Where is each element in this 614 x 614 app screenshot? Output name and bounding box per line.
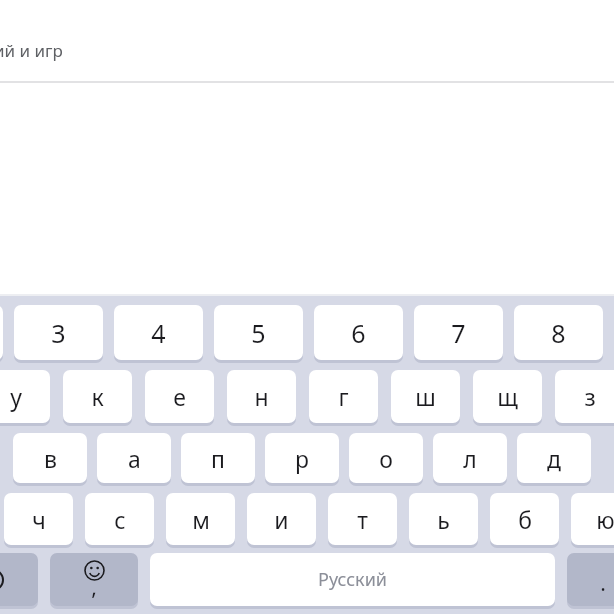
staticText: ю xyxy=(596,504,614,535)
button[interactable]: 3 xyxy=(14,305,103,360)
button[interactable]: г xyxy=(309,370,378,423)
staticText: к xyxy=(91,381,104,412)
staticText: г xyxy=(338,381,349,412)
button[interactable]: у xyxy=(0,370,50,423)
button[interactable]: е xyxy=(145,370,214,423)
staticText: л xyxy=(463,443,477,474)
button[interactable]: п xyxy=(181,433,255,483)
button[interactable]: 8 xyxy=(514,305,603,360)
button[interactable]: о xyxy=(349,433,423,483)
staticText: е xyxy=(173,381,186,412)
staticText: р xyxy=(295,443,309,474)
button[interactable]: щ xyxy=(473,370,542,423)
staticText: ч xyxy=(32,504,46,535)
button[interactable]: з xyxy=(555,370,614,423)
staticText: с xyxy=(114,504,126,535)
staticText: ий и игр xyxy=(0,39,63,62)
staticText: ш xyxy=(415,381,436,412)
button[interactable]: с xyxy=(85,493,154,545)
button[interactable]: Period xyxy=(567,553,614,606)
staticText: 8 xyxy=(551,316,566,350)
staticText: щ xyxy=(497,381,518,412)
staticText: ь xyxy=(437,504,450,535)
staticText: д xyxy=(547,443,561,474)
staticText: 3 xyxy=(51,316,66,350)
button[interactable]: д xyxy=(517,433,591,483)
staticText: а xyxy=(128,443,141,474)
button[interactable]: 2 xyxy=(0,305,3,360)
button[interactable]: ч xyxy=(4,493,73,545)
staticText: у xyxy=(10,381,22,412)
button[interactable]: ь xyxy=(409,493,478,545)
button[interactable]: а xyxy=(97,433,171,483)
staticText: б xyxy=(518,504,532,535)
button[interactable]: р xyxy=(265,433,339,483)
button[interactable]: 5 xyxy=(214,305,303,360)
button[interactable]: б xyxy=(490,493,559,545)
button[interactable]: к xyxy=(63,370,132,423)
staticText: 6 xyxy=(351,316,366,350)
button[interactable]: Switch keyboard xyxy=(0,553,38,606)
button[interactable]: т xyxy=(328,493,397,545)
staticText: в xyxy=(44,443,57,474)
staticText: 5 xyxy=(251,316,266,350)
button[interactable]: 6 xyxy=(314,305,403,360)
button[interactable]: л xyxy=(433,433,507,483)
button[interactable]: 7 xyxy=(414,305,503,360)
button[interactable]: н xyxy=(227,370,296,423)
button[interactable]: Русский xyxy=(150,553,555,606)
staticText: , xyxy=(91,573,97,602)
staticText: Русский xyxy=(318,567,387,592)
staticText: т xyxy=(357,504,368,535)
staticText: . xyxy=(600,569,606,598)
staticText: о xyxy=(379,443,393,474)
button[interactable]: ш xyxy=(391,370,460,423)
staticText: 4 xyxy=(151,316,166,350)
staticText: з xyxy=(584,381,596,412)
button[interactable]: ю xyxy=(571,493,614,545)
staticText: н xyxy=(254,381,269,412)
staticText: м xyxy=(192,504,210,535)
button[interactable]: и xyxy=(247,493,316,545)
staticText: 7 xyxy=(451,316,466,350)
button[interactable]: Emoji and comma xyxy=(50,553,138,606)
button[interactable]: в xyxy=(13,433,87,483)
staticText: п xyxy=(211,443,225,474)
staticText: и xyxy=(274,504,289,535)
button[interactable]: 4 xyxy=(114,305,203,360)
button[interactable]: м xyxy=(166,493,235,545)
